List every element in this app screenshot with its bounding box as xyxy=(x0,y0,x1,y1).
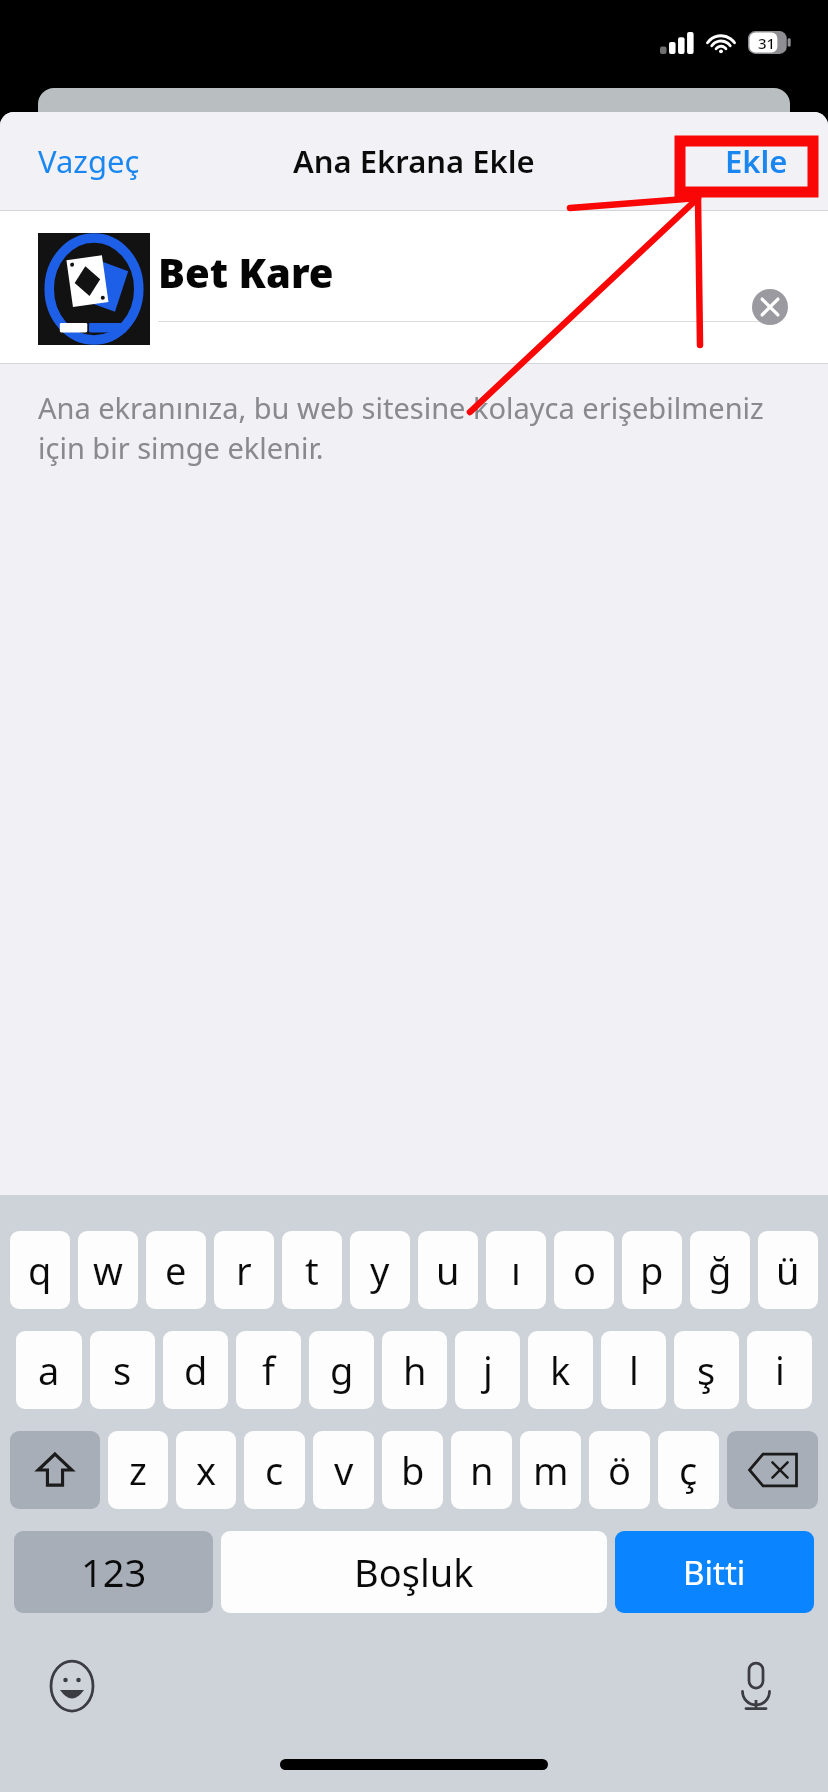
button[interactable]: Temizle xyxy=(748,285,792,329)
button[interactable]: i xyxy=(747,1331,812,1409)
staticText: l xyxy=(629,1344,639,1396)
staticText: o xyxy=(573,1244,596,1296)
button[interactable]: r xyxy=(214,1231,274,1309)
button[interactable]: v xyxy=(313,1431,374,1509)
button[interactable]: l xyxy=(601,1331,666,1409)
button[interactable]: b xyxy=(382,1431,443,1509)
button[interactable]: k xyxy=(528,1331,593,1409)
button[interactable]: w xyxy=(78,1231,138,1309)
staticText: a xyxy=(38,1344,60,1396)
staticText: x xyxy=(196,1444,217,1496)
button[interactable]: Emoji xyxy=(44,1658,100,1714)
button[interactable]: u xyxy=(418,1231,478,1309)
button[interactable]: a xyxy=(16,1331,82,1409)
button[interactable]: ç xyxy=(658,1431,719,1509)
staticText: Bet Kare xyxy=(158,245,334,299)
staticText: j xyxy=(483,1344,493,1396)
staticText: u xyxy=(436,1244,460,1296)
button[interactable]: x xyxy=(176,1431,236,1509)
staticText: s xyxy=(113,1344,132,1396)
button[interactable]: y xyxy=(350,1231,410,1309)
button[interactable]: Boşluk xyxy=(221,1531,607,1613)
button[interactable]: ö xyxy=(589,1431,650,1509)
staticText: c xyxy=(265,1444,284,1496)
staticText: Bitti xyxy=(683,1550,746,1595)
button[interactable]: o xyxy=(554,1231,614,1309)
button[interactable]: Ekle xyxy=(707,130,806,192)
button[interactable]: d xyxy=(163,1331,228,1409)
staticText: b xyxy=(401,1444,425,1496)
staticText: 31 xyxy=(758,33,776,53)
staticText: Ana Ekrana Ekle xyxy=(293,140,535,182)
staticText: ö xyxy=(608,1444,631,1496)
staticText: z xyxy=(129,1444,147,1496)
staticText: Boşluk xyxy=(354,1546,474,1598)
staticText: k xyxy=(550,1344,571,1396)
staticText: e xyxy=(165,1244,187,1296)
button[interactable]: g xyxy=(309,1331,374,1409)
staticText: f xyxy=(262,1344,276,1396)
button[interactable]: ü xyxy=(758,1231,818,1309)
button[interactable]: n xyxy=(451,1431,512,1509)
button[interactable]: Geri sil xyxy=(727,1431,818,1509)
button[interactable]: z xyxy=(108,1431,168,1509)
staticText: t xyxy=(305,1244,319,1296)
staticText: y xyxy=(370,1244,390,1296)
staticText: n xyxy=(470,1444,494,1496)
button[interactable]: f xyxy=(236,1331,301,1409)
staticText: h xyxy=(403,1344,427,1396)
staticText: r xyxy=(236,1244,252,1296)
button[interactable]: c xyxy=(244,1431,305,1509)
button[interactable]: h xyxy=(382,1331,447,1409)
staticText: w xyxy=(93,1244,123,1296)
button[interactable]: t xyxy=(282,1231,342,1309)
button[interactable]: Vazgeç xyxy=(20,130,158,192)
staticText: d xyxy=(184,1344,208,1396)
staticText: q xyxy=(28,1244,52,1296)
button[interactable]: 123 xyxy=(14,1531,213,1613)
staticText: ğ xyxy=(708,1244,732,1296)
staticText: p xyxy=(640,1244,664,1296)
button[interactable]: s xyxy=(90,1331,155,1409)
button[interactable]: Dikte xyxy=(728,1658,784,1714)
staticText: g xyxy=(330,1344,354,1396)
staticText: 123 xyxy=(81,1546,147,1598)
staticText: ş xyxy=(697,1344,716,1396)
staticText: Ekle xyxy=(725,140,788,182)
staticText: ç xyxy=(679,1444,698,1496)
button[interactable]: m xyxy=(520,1431,581,1509)
button[interactable]: e xyxy=(146,1231,206,1309)
staticText: Vazgeç xyxy=(38,140,140,182)
staticText: ı xyxy=(511,1244,521,1296)
staticText: Ana ekranınıza, bu web sitesine kolayca … xyxy=(38,388,788,468)
staticText: m xyxy=(533,1444,569,1496)
button[interactable]: Bitti xyxy=(615,1531,814,1613)
button[interactable]: ı xyxy=(486,1231,546,1309)
staticText: v xyxy=(334,1444,354,1496)
button[interactable]: q xyxy=(10,1231,70,1309)
staticText: ü xyxy=(776,1244,800,1296)
staticText: i xyxy=(775,1344,785,1396)
button[interactable]: j xyxy=(455,1331,520,1409)
button[interactable]: Shift xyxy=(10,1431,100,1509)
button[interactable]: ş xyxy=(674,1331,739,1409)
button[interactable]: p xyxy=(622,1231,682,1309)
button[interactable]: ğ xyxy=(690,1231,750,1309)
